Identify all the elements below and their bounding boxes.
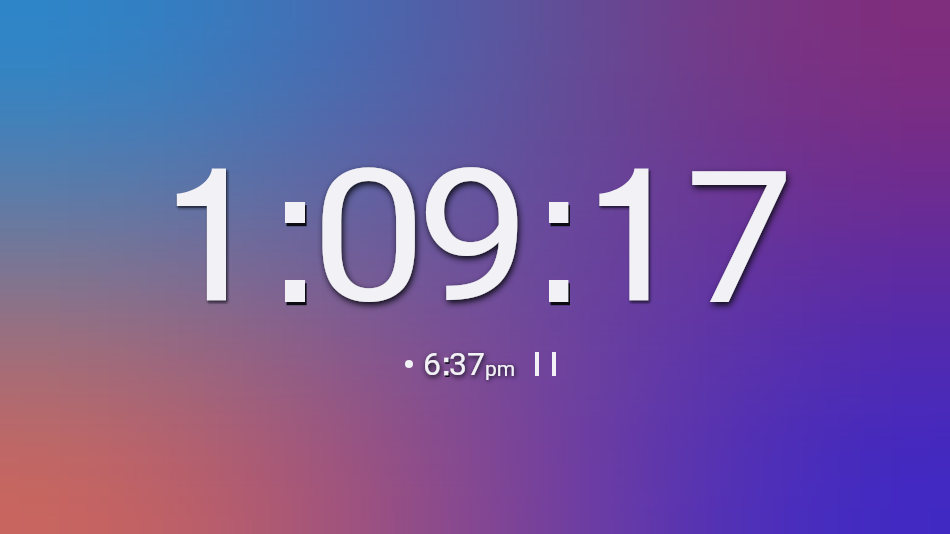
staticText: 0 bbox=[311, 129, 427, 345]
staticText: pm bbox=[485, 357, 516, 382]
staticText: 9 bbox=[416, 129, 531, 345]
staticText: 6 37 bbox=[423, 345, 485, 383]
staticText: 7 bbox=[685, 131, 795, 347]
button[interactable]: Pause bbox=[531, 347, 559, 380]
